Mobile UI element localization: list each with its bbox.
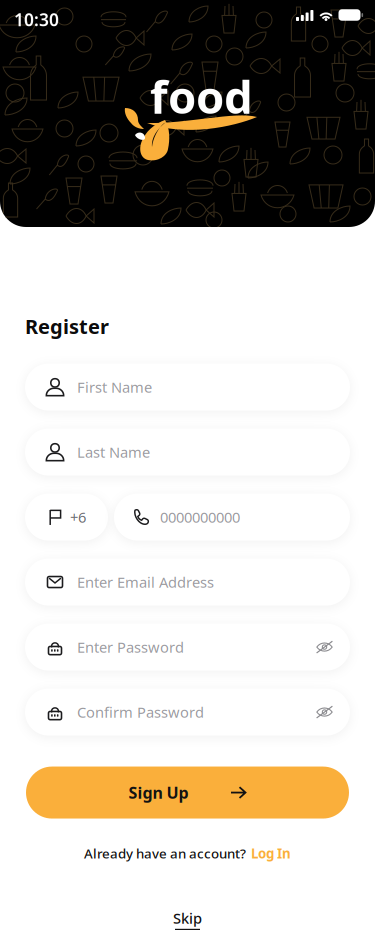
staticText: First Name (77, 377, 152, 397)
button[interactable]: Skip (173, 908, 202, 930)
button[interactable]: Log In (251, 845, 291, 862)
staticText: Log In (251, 845, 291, 862)
staticText: Skip (173, 908, 202, 928)
staticText: food (150, 66, 253, 126)
staticText: 10:30 (14, 8, 59, 31)
button[interactable]: Confirm Password (25, 689, 350, 736)
staticText: Enter Email Address (77, 572, 214, 592)
button[interactable]: First Name (25, 364, 350, 411)
button[interactable]: Last Name (25, 429, 350, 476)
staticText: Already have an account? (84, 845, 246, 862)
staticText: Register (25, 313, 109, 340)
staticText: Sign Up (128, 782, 188, 803)
staticText: Enter Password (77, 637, 184, 657)
staticText: Last Name (77, 442, 150, 462)
button[interactable]: Sign Up (26, 767, 349, 819)
staticText: 0000000000 (160, 507, 240, 527)
button[interactable]: Enter Email Address (25, 559, 350, 606)
staticText: Confirm Password (77, 702, 204, 722)
staticText: +6 (70, 507, 86, 527)
button[interactable]: Enter Password (25, 624, 350, 671)
button[interactable]: +6 (25, 494, 108, 541)
button[interactable]: 0000000000 (114, 494, 350, 541)
